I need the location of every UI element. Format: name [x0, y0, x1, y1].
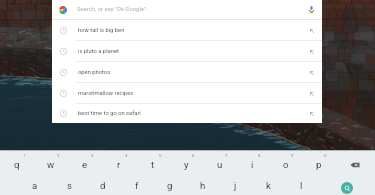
- button[interactable]: a: [18, 177, 52, 195]
- button[interactable]: k: [252, 177, 285, 195]
- staticText: Search, or say "Ok Google": [77, 6, 146, 13]
- button[interactable]: Use suggestion: [303, 105, 320, 122]
- staticText: 6: [192, 153, 195, 158]
- staticText: is pluto a planet: [78, 48, 119, 55]
- staticText: 0: [324, 153, 327, 158]
- button[interactable]: j: [219, 177, 252, 195]
- button[interactable]: 7: [203, 150, 236, 177]
- button[interactable]: f: [120, 177, 153, 195]
- staticText: 3: [91, 153, 94, 158]
- staticText: 2: [57, 153, 60, 158]
- staticText: q: [14, 159, 20, 170]
- button[interactable]: how tall is big ben: [52, 20, 322, 40]
- staticText: s: [67, 180, 72, 191]
- staticText: u: [217, 159, 223, 170]
- button[interactable]: open photos: [52, 62, 322, 82]
- button[interactable]: h: [186, 177, 219, 195]
- staticText: 8: [258, 153, 261, 158]
- staticText: r: [117, 159, 121, 170]
- button[interactable]: 8: [236, 150, 269, 177]
- button[interactable]: Use suggestion: [303, 22, 320, 39]
- button[interactable]: s: [52, 177, 86, 195]
- button[interactable]: Use suggestion: [303, 64, 320, 81]
- staticText: j: [234, 180, 237, 191]
- staticText: e: [82, 159, 88, 170]
- staticText: i: [251, 159, 254, 170]
- button[interactable]: Backspace: [335, 150, 375, 177]
- staticText: g: [167, 180, 173, 191]
- button[interactable]: marshmallow recipes: [52, 83, 322, 103]
- staticText: f: [135, 180, 139, 191]
- staticText: h: [200, 180, 206, 191]
- button[interactable]: 5: [136, 150, 170, 177]
- staticText: open photos: [78, 69, 111, 76]
- staticText: 4: [125, 153, 128, 158]
- button[interactable]: 9: [269, 150, 302, 177]
- staticText: p: [316, 159, 322, 170]
- staticText: t: [151, 159, 155, 170]
- staticText: k: [266, 180, 271, 191]
- staticText: best time to go on safari: [78, 110, 141, 117]
- button[interactable]: 4: [102, 150, 136, 177]
- staticText: how tall is big ben: [78, 27, 125, 34]
- staticText: o: [283, 159, 289, 170]
- button[interactable]: is pluto a planet: [52, 41, 322, 61]
- staticText: 7: [225, 153, 228, 158]
- staticText: 5: [159, 153, 162, 158]
- button[interactable]: d: [86, 177, 120, 195]
- staticText: l: [300, 180, 303, 191]
- button[interactable]: Search, or say "Ok Google": [52, 0, 322, 19]
- staticText: 9: [291, 153, 294, 158]
- staticText: w: [47, 159, 55, 170]
- staticText: marshmallow recipes: [78, 90, 134, 97]
- button[interactable]: Use suggestion: [303, 43, 320, 60]
- button[interactable]: 6: [170, 150, 203, 177]
- button[interactable]: best time to go on safari: [52, 104, 322, 123]
- button[interactable]: Voice search: [303, 1, 320, 18]
- button[interactable]: Use suggestion: [303, 85, 320, 102]
- button[interactable]: Search: [341, 182, 353, 194]
- button[interactable]: 2: [34, 150, 68, 177]
- button[interactable]: 0: [302, 150, 335, 177]
- staticText: y: [184, 159, 189, 170]
- staticText: d: [100, 180, 106, 191]
- button[interactable]: l: [285, 177, 318, 195]
- staticText: 1: [23, 153, 26, 158]
- button[interactable]: 1: [0, 150, 34, 177]
- button[interactable]: g: [153, 177, 186, 195]
- button[interactable]: 3: [68, 150, 102, 177]
- staticText: a: [32, 180, 38, 191]
